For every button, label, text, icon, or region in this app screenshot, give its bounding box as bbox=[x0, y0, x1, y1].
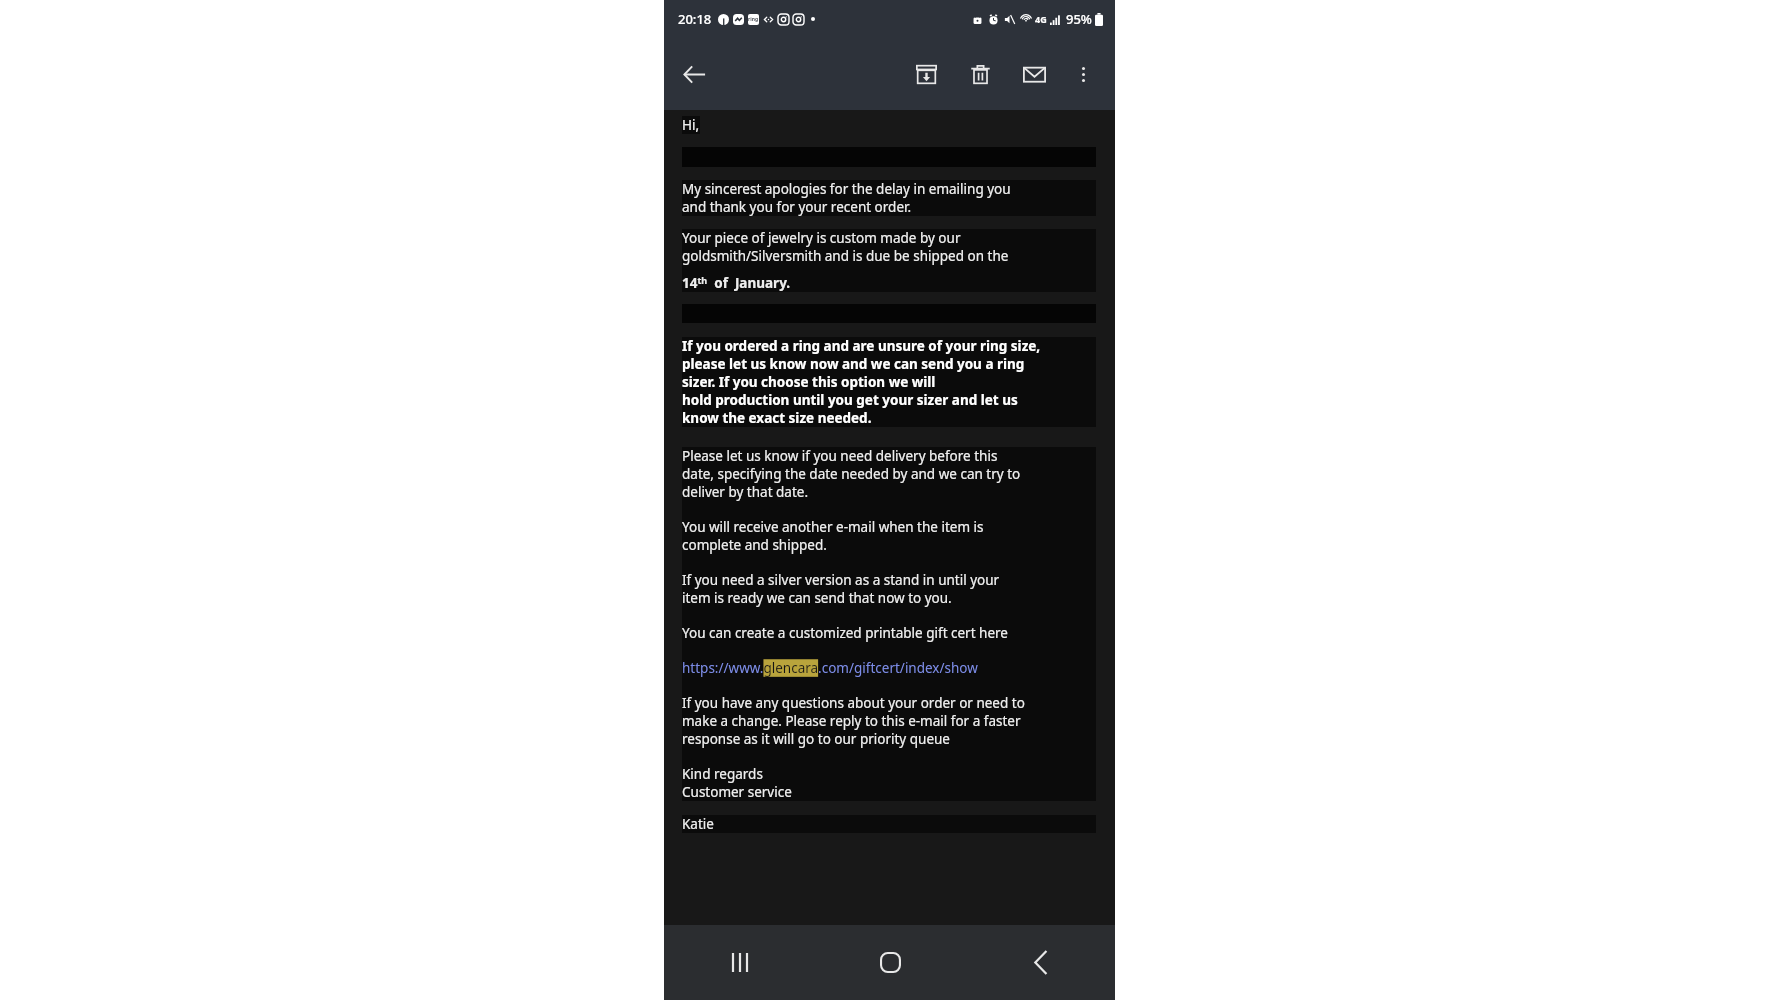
staticText: If you ordered a ring and are unsure of … bbox=[682, 337, 1041, 427]
staticText: ring bbox=[748, 16, 759, 23]
staticText: Katie bbox=[682, 815, 714, 833]
button[interactable]: Home bbox=[815, 925, 965, 1000]
staticText: My sincerest apologies for the delay in … bbox=[682, 180, 1011, 216]
button[interactable]: Archive bbox=[902, 50, 950, 98]
staticText: 4G bbox=[1035, 13, 1047, 25]
button[interactable]: Recent apps bbox=[664, 925, 815, 1000]
button[interactable]: Back bbox=[965, 925, 1115, 1000]
button[interactable]: More options bbox=[1059, 50, 1107, 98]
staticText: 20:18 bbox=[678, 10, 712, 28]
staticText: Hi, bbox=[682, 116, 700, 134]
staticText: If you have any questions about your ord… bbox=[682, 694, 1025, 748]
button[interactable]: Delete bbox=[956, 50, 1004, 98]
staticText: Your piece of jewelry is custom made by … bbox=[682, 229, 1009, 292]
button[interactable]: Navigate up bbox=[670, 50, 718, 98]
staticText: If you need a silver version as a stand … bbox=[682, 571, 1000, 607]
button[interactable]: https://www.glencara.com/giftcert/index/… bbox=[682, 659, 978, 677]
staticText: https://www.glencara.com/giftcert/index/… bbox=[682, 659, 978, 677]
button[interactable]: Mark as unread bbox=[1010, 50, 1058, 98]
staticText: Please let us know if you need delivery … bbox=[682, 447, 1021, 501]
staticText: 95% bbox=[1066, 10, 1092, 28]
staticText: You will receive another e-mail when the… bbox=[682, 518, 984, 554]
staticText: Kind regards Customer service bbox=[682, 765, 792, 801]
staticText: You can create a customized printable gi… bbox=[682, 624, 1008, 642]
